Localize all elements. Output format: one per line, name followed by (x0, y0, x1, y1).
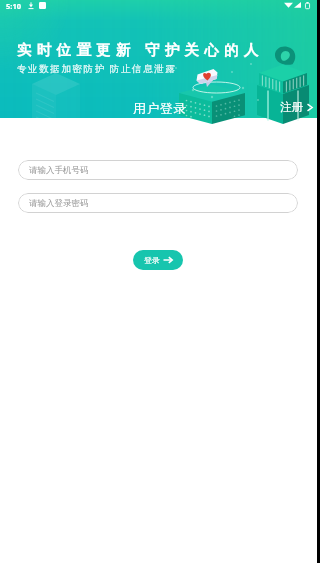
staticText: 实时位置更新 守护关心的人 (17, 39, 264, 59)
staticText: 注册 (280, 100, 303, 114)
staticText: 登录 (144, 255, 160, 265)
staticText: 专业数据加密防护 防止信息泄露 (17, 62, 177, 75)
button[interactable]: 请输入手机号码 (18, 160, 298, 180)
staticText: 请输入登录密码 (29, 198, 89, 209)
staticText: 请输入手机号码 (29, 165, 89, 176)
button[interactable]: 注册 (274, 96, 320, 118)
staticText: 用户登录 (133, 100, 187, 114)
button[interactable]: 请输入登录密码 (18, 193, 298, 213)
button[interactable]: 登录 (133, 250, 183, 270)
staticText: 5:10 (6, 1, 21, 9)
button[interactable]: 用户登录 (123, 96, 197, 118)
